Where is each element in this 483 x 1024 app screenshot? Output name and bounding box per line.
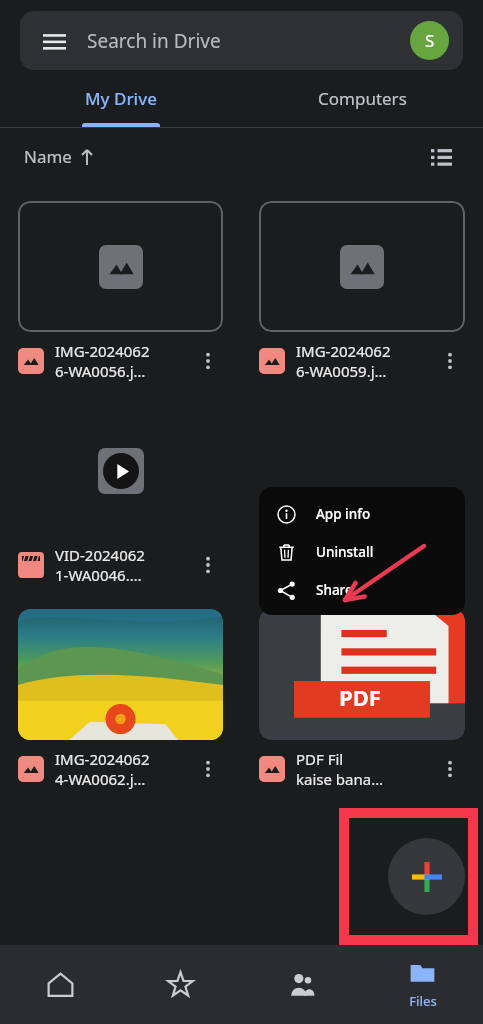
- button[interactable]: Shared: [241, 945, 362, 1024]
- staticText: IMG-2024062 4-WA0062.j…: [55, 749, 193, 789]
- staticText: IMG-2024062 6-WA0056.j…: [55, 341, 193, 381]
- staticText: Files: [409, 992, 437, 1010]
- button[interactable]: Create new file: [388, 838, 465, 915]
- button[interactable]: Uninstall: [259, 533, 465, 571]
- staticText: PDF: [339, 682, 381, 712]
- staticText: IMG-2024062 6-WA0059.j…: [296, 341, 435, 381]
- staticText: Game download k…: [296, 545, 435, 585]
- button[interactable]: Open navigation drawer: [34, 21, 74, 61]
- button[interactable]: More options for IMG-2024062 6-WA0056.j…: [193, 346, 223, 376]
- button[interactable]: Account: [410, 21, 449, 60]
- staticText: Name: [24, 145, 72, 168]
- button[interactable]: Name: [22, 139, 97, 174]
- button[interactable]: IMG-2024062 6-WA0059.j…: [259, 201, 465, 381]
- button[interactable]: More options for IMG-2024062 6-WA0059.j…: [435, 346, 465, 376]
- button[interactable]: IMG-2024062 6-WA0056.j…: [18, 201, 223, 381]
- staticText: App info: [316, 505, 371, 523]
- button[interactable]: Files: [362, 945, 483, 1024]
- button[interactable]: More options for VID-2024062 1-WA0046.…: [193, 550, 223, 580]
- button[interactable]: More options for IMG-2024062 4-WA0062.j…: [193, 754, 223, 784]
- button[interactable]: Open navigation drawer: [20, 11, 463, 70]
- staticText: VID-2024062 1-WA0046.…: [55, 545, 193, 585]
- staticText: S: [425, 29, 435, 52]
- button[interactable]: PDF: [259, 609, 465, 789]
- staticText: Search in Drive: [87, 28, 221, 54]
- staticText: Uninstall: [316, 543, 374, 561]
- button[interactable]: VID-2024062 1-WA0046.…: [18, 405, 223, 585]
- button[interactable]: Game download k…: [259, 405, 465, 585]
- staticText: Share: [316, 581, 353, 599]
- button[interactable]: IMG-2024062 4-WA0062.j…: [18, 609, 223, 789]
- button[interactable]: Computers: [241, 70, 483, 127]
- staticText: PDF Fil kaise bana…: [296, 749, 435, 789]
- button[interactable]: My Drive: [0, 70, 241, 127]
- staticText: Computers: [318, 87, 407, 110]
- staticText: My Drive: [85, 87, 157, 110]
- button[interactable]: Home: [0, 945, 120, 1024]
- button[interactable]: More options for PDF Fil kaise bana…: [435, 754, 465, 784]
- button[interactable]: App info: [259, 495, 465, 533]
- button[interactable]: Share: [259, 571, 465, 609]
- button[interactable]: Starred: [120, 945, 241, 1024]
- button[interactable]: Switch to list view: [421, 137, 461, 177]
